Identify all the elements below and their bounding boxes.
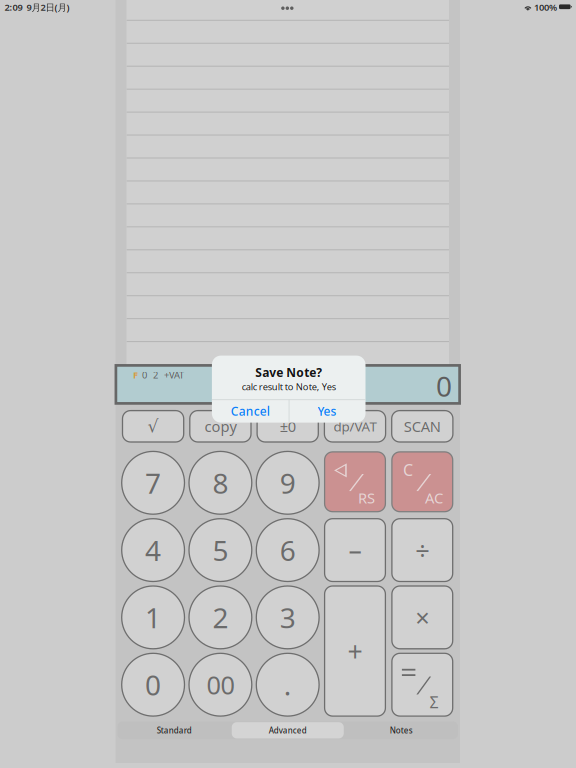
staticText: –	[348, 531, 361, 567]
staticText: 0	[145, 666, 161, 703]
staticText: Standard	[157, 725, 192, 736]
button[interactable]: Minus	[325, 519, 385, 581]
button[interactable]: 3	[256, 586, 319, 649]
button[interactable]: Multiply	[392, 586, 453, 649]
button[interactable]: 2	[189, 586, 252, 649]
button[interactable]: 9	[256, 451, 319, 514]
staticText: 9月2日(月)	[22, 1, 69, 13]
staticText: SCAN	[404, 417, 441, 436]
staticText: 4	[145, 531, 161, 569]
staticText: C	[403, 459, 413, 480]
button[interactable]: Equals and sum	[392, 653, 453, 716]
staticText: 0 2 +VAT	[138, 369, 184, 381]
staticText: 00	[206, 668, 234, 701]
button[interactable]: 7	[122, 451, 184, 514]
staticText: 0	[436, 367, 452, 404]
staticText: AC	[425, 488, 443, 507]
staticText: ÷	[415, 533, 429, 567]
staticText: Notes	[390, 725, 413, 736]
button[interactable]: Plus	[325, 586, 385, 716]
staticText: +	[347, 633, 362, 669]
staticText: copy	[204, 417, 236, 436]
button[interactable]: 8	[189, 451, 252, 514]
button[interactable]: Notes	[344, 721, 458, 739]
staticText: 5	[212, 531, 228, 569]
staticText: 7	[145, 464, 161, 501]
button[interactable]: All clear	[392, 452, 453, 512]
staticText: RS	[358, 488, 375, 507]
button[interactable]: copy	[190, 411, 251, 442]
button[interactable]: 00	[189, 653, 252, 716]
staticText: 9	[280, 464, 296, 501]
staticText: 1	[145, 599, 161, 636]
staticText: ×	[415, 601, 429, 634]
staticText: F	[133, 369, 138, 381]
staticText: Save Note?	[255, 364, 322, 380]
staticText: 3	[280, 599, 296, 636]
button[interactable]: Divide	[392, 519, 453, 581]
button[interactable]: Advanced	[231, 721, 344, 739]
button[interactable]: Yes	[289, 400, 365, 423]
button[interactable]: Cancel	[212, 400, 289, 423]
staticText: 6	[280, 531, 296, 569]
staticText: 8	[212, 464, 228, 501]
staticText: Cancel	[231, 403, 270, 419]
staticText: Advanced	[269, 725, 307, 736]
button[interactable]: SCAN	[392, 411, 453, 442]
button[interactable]: dp/VAT	[324, 411, 386, 442]
staticText: 2:09	[4, 1, 22, 13]
button[interactable]: 6	[256, 519, 319, 581]
button[interactable]: ±0	[257, 411, 318, 442]
staticText: 100%	[532, 1, 559, 13]
staticText: 2	[212, 599, 228, 636]
button[interactable]: More	[275, 0, 301, 14]
button[interactable]: Standard	[117, 721, 231, 739]
button[interactable]: 4	[122, 519, 184, 581]
staticText: Σ	[429, 691, 438, 713]
staticText: calc result to Note, Yes	[242, 380, 336, 393]
staticText: dp/VAT	[333, 417, 376, 435]
button[interactable]: 0	[122, 653, 184, 716]
staticText: Yes	[318, 403, 337, 419]
staticText: .	[284, 666, 292, 703]
button[interactable]: 1	[122, 586, 184, 649]
button[interactable]: Backspace	[325, 452, 385, 512]
button[interactable]: 5	[189, 519, 252, 581]
button[interactable]: .	[256, 653, 319, 716]
staticText: √	[148, 416, 159, 436]
staticText: ±0	[280, 417, 296, 436]
button[interactable]: √	[122, 411, 184, 442]
